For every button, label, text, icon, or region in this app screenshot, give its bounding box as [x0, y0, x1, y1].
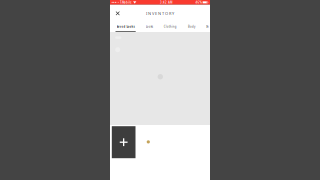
staticText: T-Mobile [119, 1, 133, 4]
button[interactable]: Saved Looks [115, 22, 136, 32]
button[interactable]: Sh [205, 22, 210, 32]
staticText: 46% [195, 1, 202, 4]
staticText: Sh [206, 25, 209, 28]
staticText: I N V E N T O R Y [146, 11, 174, 16]
staticText: 3:42 AM [160, 1, 172, 4]
button[interactable]: Body [186, 22, 196, 32]
staticText: Clothing [164, 25, 177, 28]
button[interactable]: Clothing [163, 22, 178, 32]
staticText: Body [188, 25, 195, 28]
button[interactable]: Close [112, 8, 123, 19]
staticText: Looks [146, 25, 153, 28]
button[interactable]: Looks [144, 22, 154, 32]
staticText: Saved Looks [117, 25, 135, 28]
button[interactable]: Add item [112, 126, 135, 158]
